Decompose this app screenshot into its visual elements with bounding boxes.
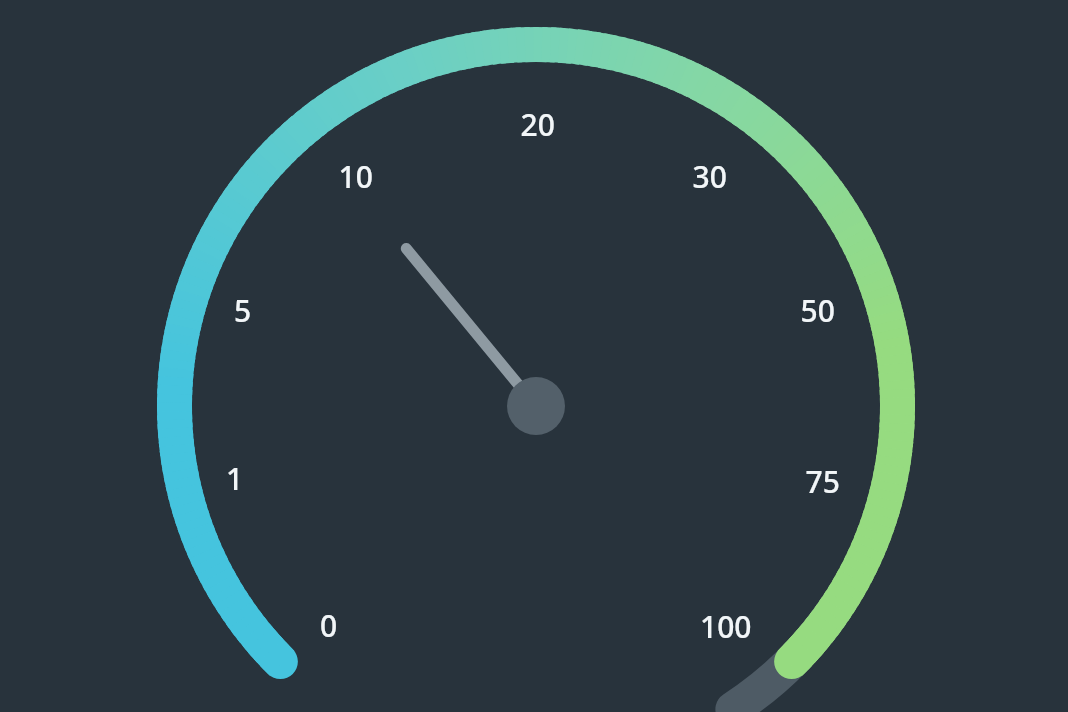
button[interactable]: Speed gauge: [0, 0, 1068, 712]
